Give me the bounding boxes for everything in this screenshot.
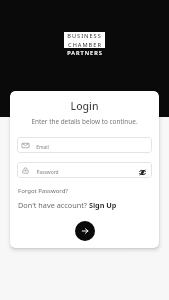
staticText: Forgot Password?: [18, 187, 68, 195]
button[interactable]: Forgot Password?: [17, 186, 69, 196]
staticText: CHAMBER: [68, 41, 102, 48]
button[interactable]: Email: [17, 137, 152, 153]
staticText: Enter the details below to continue.: [10, 117, 159, 126]
button[interactable]: Continue: [75, 221, 95, 241]
staticText: BUSINESS: [67, 32, 102, 40]
button[interactable]: Don't have account? Sign Up: [17, 199, 118, 211]
staticText: Login: [10, 99, 159, 113]
button[interactable]: Show password: [137, 167, 148, 178]
staticText: Password: [36, 169, 59, 176]
staticText: PARTNERS: [67, 49, 103, 57]
button[interactable]: Password: [17, 162, 152, 178]
staticText: Email: [36, 144, 49, 151]
staticText: Don't have account? Sign Up: [18, 200, 117, 210]
